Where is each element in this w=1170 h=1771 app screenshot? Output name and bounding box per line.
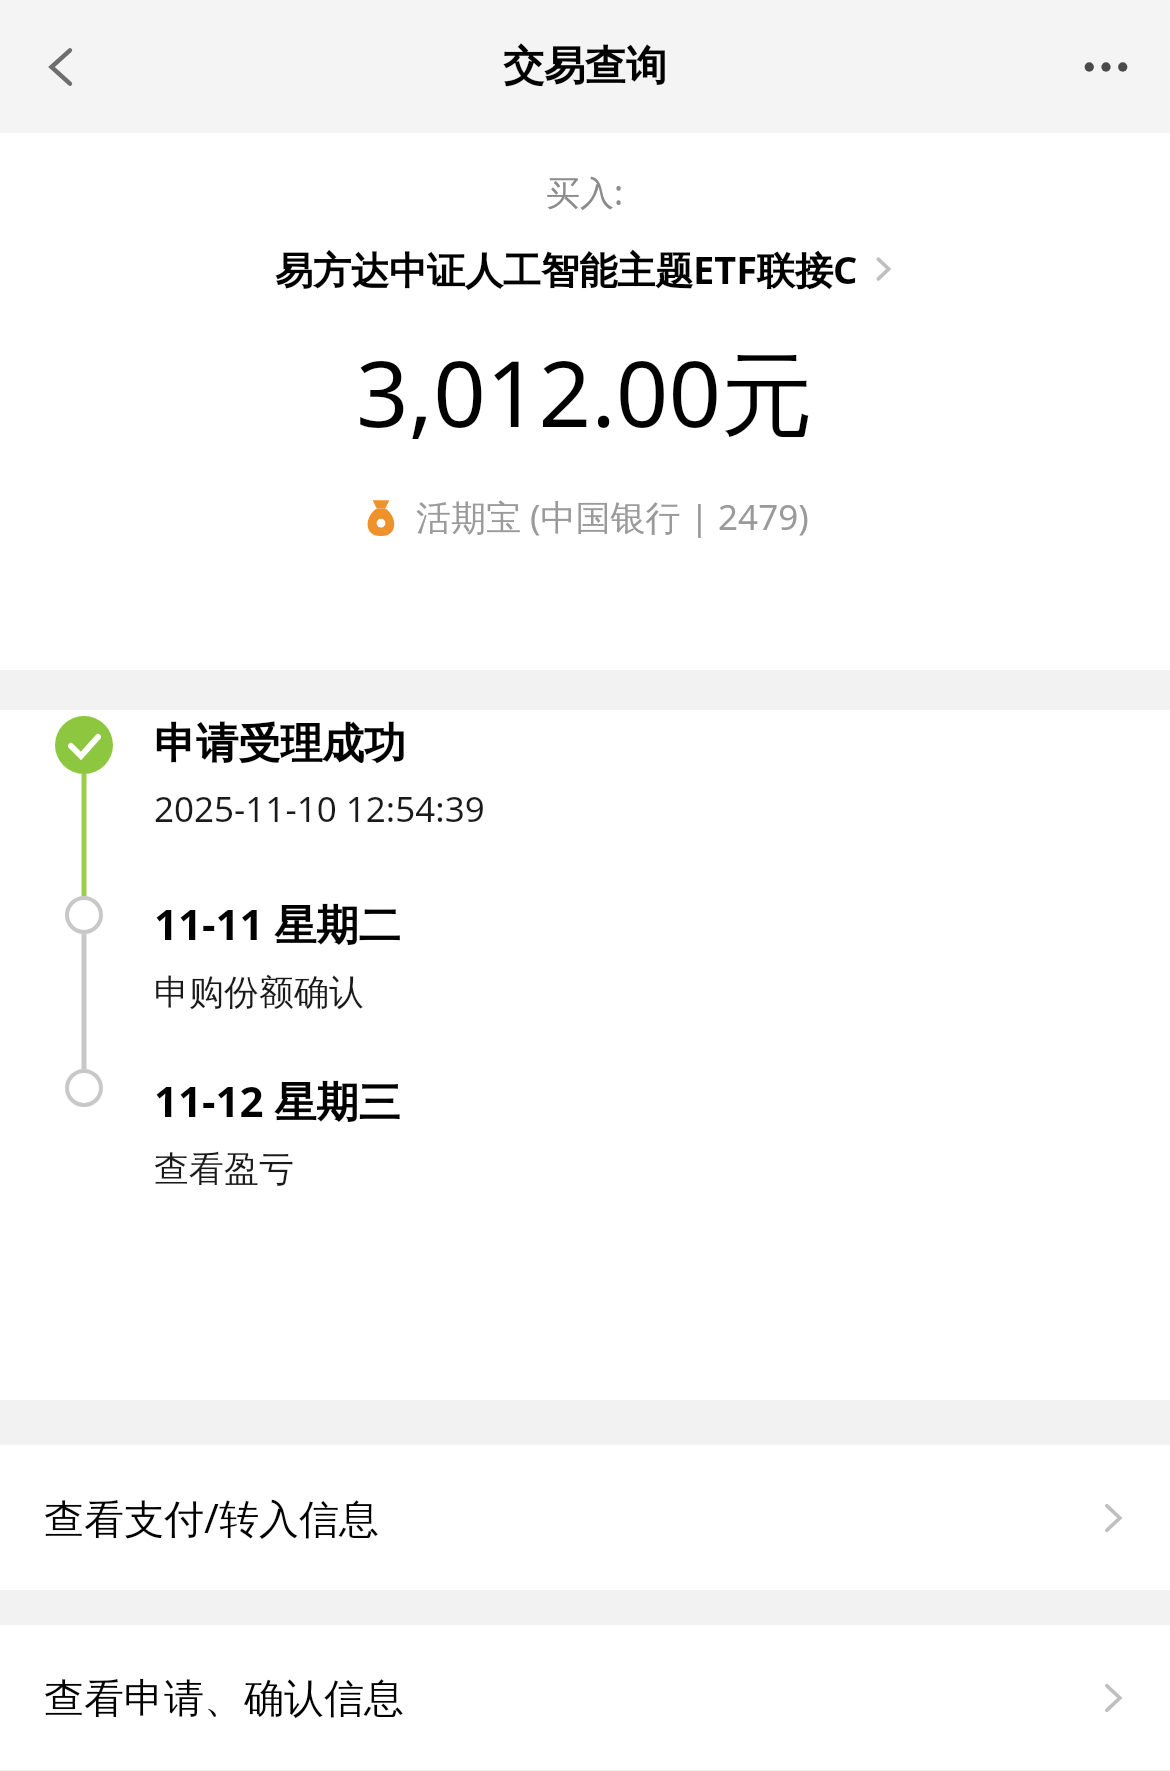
staticText: 易方达中证人工智能主题ETF联接C (275, 243, 858, 295)
staticText: 2025-11-10 12:54:39 (154, 785, 485, 833)
staticText: 查看申请、确认信息 (44, 1673, 1096, 1723)
button[interactable]: 易方达中证人工智能主题ETF联接C (259, 239, 912, 299)
staticText: 申购份额确认 (154, 970, 364, 1014)
staticText: 申请受理成功 (154, 718, 406, 771)
staticText: 买入: (546, 169, 624, 215)
staticText: 11-12 星期三 (154, 1072, 401, 1129)
button[interactable]: Back (20, 25, 104, 109)
staticText: 3,012.00元 (356, 329, 814, 455)
staticText: 交易查询 (503, 41, 667, 93)
button[interactable]: 查看申请、确认信息 (0, 1625, 1170, 1770)
staticText: 活期宝 (中国银行 | 2479) (416, 493, 809, 541)
button[interactable]: 查看支付/转入信息 (0, 1445, 1170, 1590)
staticText: 查看盈亏 (154, 1147, 294, 1191)
button[interactable]: More options (1064, 25, 1148, 109)
staticText: 查看支付/转入信息 (44, 1490, 1096, 1545)
staticText: 11-11 星期二 (154, 895, 401, 952)
